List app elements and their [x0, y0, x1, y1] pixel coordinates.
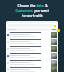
button[interactable]: Select row [6, 38, 58, 45]
button[interactable]: Select row [6, 31, 58, 38]
staticText: data [36, 4, 44, 8]
button[interactable]: Select row [6, 59, 58, 66]
button[interactable]: Highlight [57, 29, 60, 32]
button[interactable]: Select row [6, 66, 58, 72]
staticText: Customers [15, 9, 33, 13]
staticText: to work with [22, 14, 43, 18]
button[interactable]: Filter [54, 25, 56, 27]
button[interactable]: Select row [6, 52, 58, 59]
button[interactable]: Select row [7, 34, 9, 36]
staticText: & [44, 4, 48, 8]
button[interactable]: Select row [7, 55, 9, 57]
button[interactable]: Select row [6, 45, 58, 52]
staticText: you want [33, 9, 49, 13]
button[interactable]: Search [6, 21, 58, 72]
staticText: Choose the [17, 4, 36, 8]
